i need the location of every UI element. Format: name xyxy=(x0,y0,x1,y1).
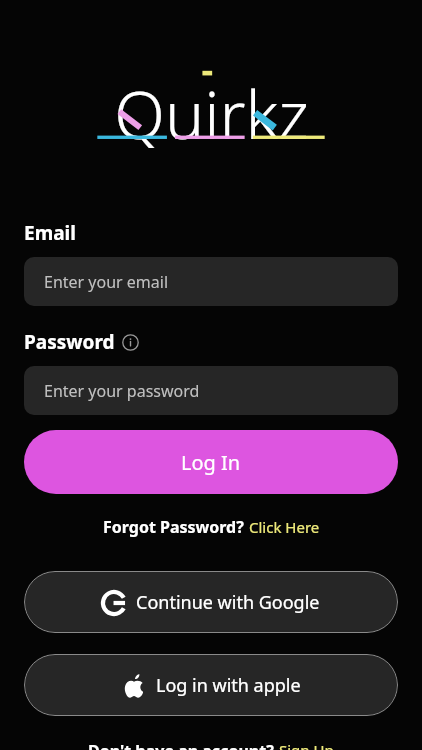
button[interactable]: Log in with apple xyxy=(24,654,398,716)
button[interactable]: Don't have an account? xyxy=(88,740,334,750)
staticText: Click Here xyxy=(249,517,320,537)
staticText: Don't have an account? xyxy=(88,740,274,750)
staticText: Enter your email xyxy=(44,271,169,293)
button[interactable]: Log In xyxy=(24,430,398,494)
other: Password info xyxy=(122,334,139,351)
staticText: Email xyxy=(24,220,76,246)
staticText: Log In xyxy=(181,449,241,476)
staticText: Continue with Google xyxy=(136,590,320,615)
staticText: Password xyxy=(24,329,115,355)
staticText: Quirkz xyxy=(114,68,309,148)
other: Quirkz xyxy=(95,68,327,148)
button[interactable]: Enter your password xyxy=(24,366,398,415)
button[interactable]: Continue with Google xyxy=(24,571,398,633)
staticText: Forgot Password? xyxy=(103,516,244,538)
staticText: Sign Up xyxy=(279,740,334,750)
button[interactable]: Forgot Password? xyxy=(97,514,326,540)
staticText: Log in with apple xyxy=(156,673,301,698)
staticText: Enter your password xyxy=(44,380,200,402)
button[interactable]: Enter your email xyxy=(24,257,398,306)
